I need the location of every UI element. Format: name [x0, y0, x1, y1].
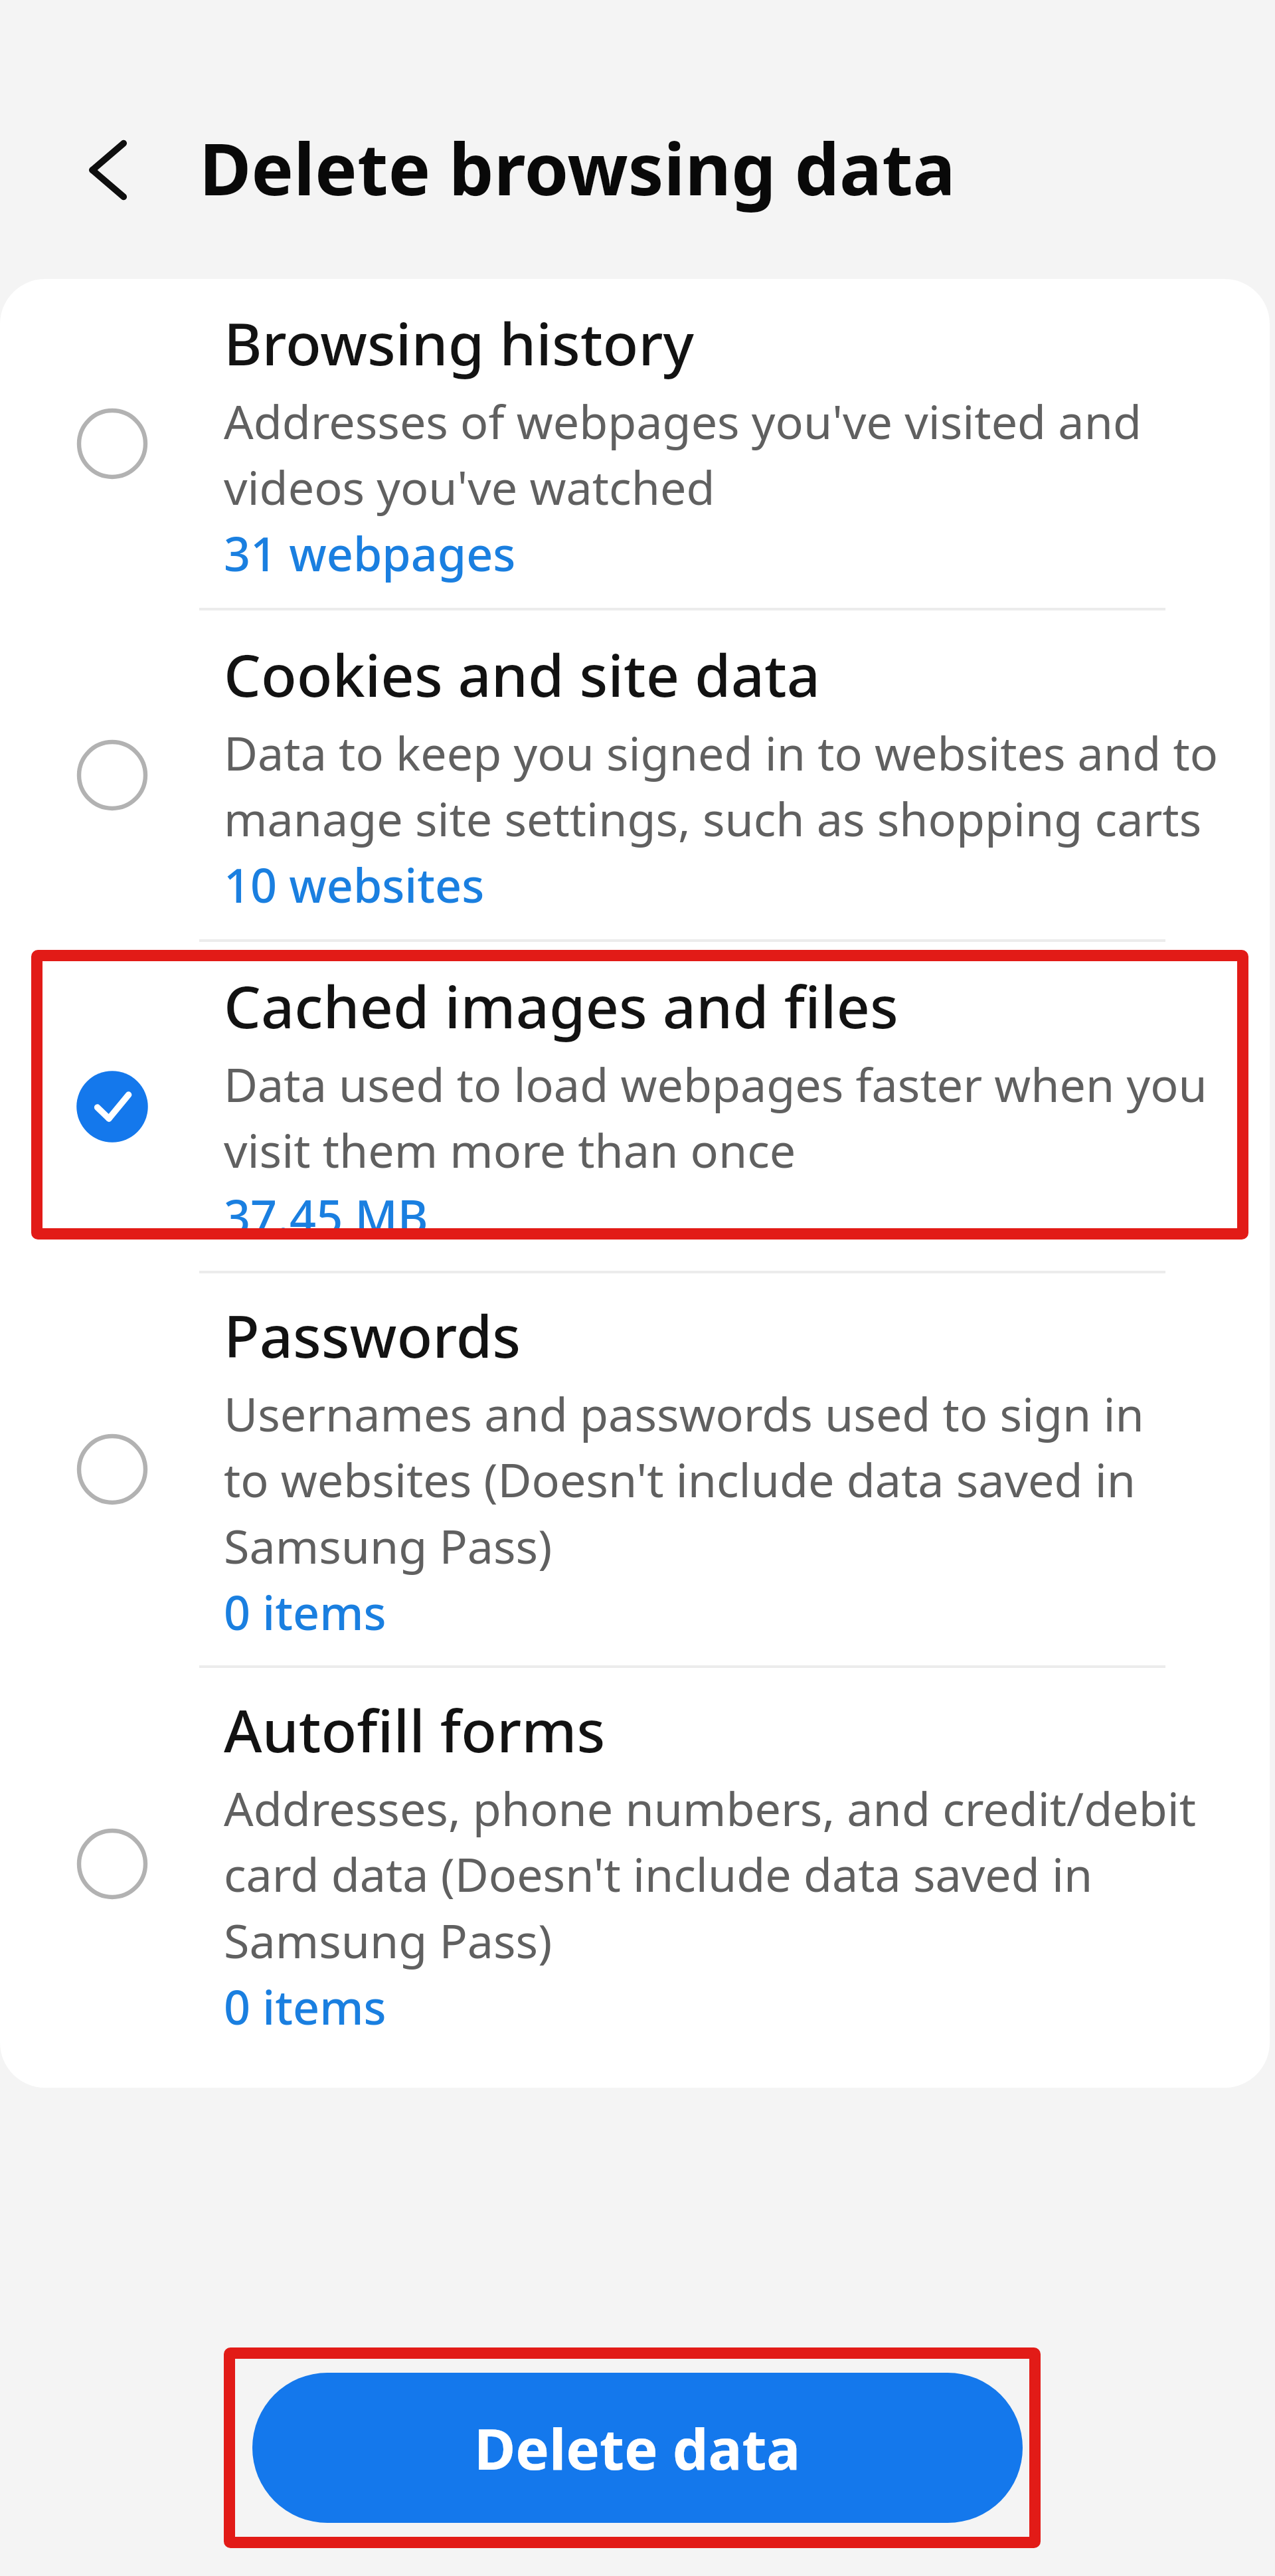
staticText: Addresses, phone numbers, and credit/deb… — [224, 1776, 1197, 1972]
staticText: Browsing history — [224, 303, 695, 383]
other: Unchecked — [75, 1827, 149, 1901]
staticText: Delete browsing data — [199, 120, 956, 217]
button[interactable]: Delete data — [252, 2373, 1023, 2523]
staticText: Addresses of webpages you've visited and… — [224, 389, 1142, 519]
staticText: 0 items — [224, 1975, 386, 2038]
other: Unchecked — [75, 407, 149, 481]
staticText: Delete data — [474, 2409, 801, 2486]
staticText: 37.45 MB — [224, 1184, 428, 1247]
button[interactable]: Unchecked — [0, 1273, 1270, 1665]
staticText: 31 webpages — [224, 521, 516, 585]
staticText: Data used to load webpages faster when y… — [224, 1052, 1207, 1182]
other: Checked — [75, 1069, 149, 1144]
other: Unchecked — [75, 738, 149, 812]
button[interactable]: Unchecked — [0, 610, 1270, 939]
staticText: Passwords — [224, 1295, 521, 1375]
staticText: Autofill forms — [224, 1690, 606, 1770]
button[interactable]: Unchecked — [0, 279, 1270, 608]
staticText: Cookies and site data — [224, 634, 821, 714]
button[interactable]: Checked — [0, 942, 1270, 1271]
button[interactable]: Back — [52, 112, 169, 229]
staticText: Usernames and passwords used to sign in … — [224, 1382, 1144, 1578]
staticText: Data to keep you signed in to websites a… — [224, 721, 1219, 850]
button[interactable]: Unchecked — [0, 1668, 1270, 2060]
staticText: 0 items — [224, 1580, 386, 1643]
staticText: 10 websites — [224, 853, 485, 916]
staticText: Cached images and files — [224, 966, 898, 1046]
other: Unchecked — [75, 1432, 149, 1507]
